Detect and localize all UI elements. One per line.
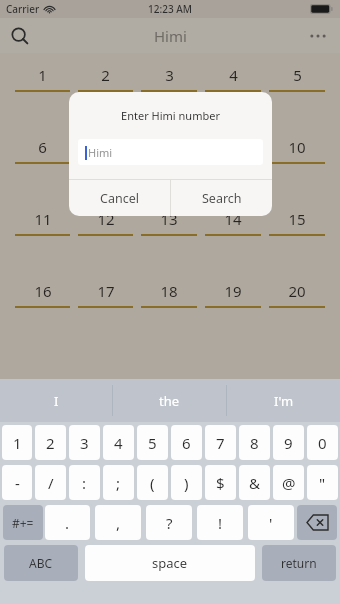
button[interactable]: 10	[267, 137, 327, 164]
staticText: "	[319, 473, 326, 493]
staticText: ?	[166, 513, 173, 533]
button[interactable]: /	[35, 465, 66, 500]
button[interactable]: $	[205, 465, 236, 500]
staticText: 6	[38, 137, 47, 157]
button[interactable]: 6	[171, 425, 202, 460]
button[interactable]: I	[0, 379, 112, 422]
staticText: Himi	[154, 26, 187, 46]
staticText: 3	[80, 433, 89, 453]
staticText: 11	[34, 209, 52, 229]
staticText: return	[281, 555, 317, 571]
staticText: 5	[293, 65, 302, 85]
button[interactable]: 12	[76, 209, 135, 236]
button[interactable]: 5	[267, 65, 327, 92]
button[interactable]: I'm	[227, 379, 340, 422]
staticText: &	[249, 473, 260, 493]
staticText: Enter Himi number	[69, 108, 272, 123]
button[interactable]: ;	[103, 465, 134, 500]
button[interactable]: the	[113, 379, 226, 422]
staticText: #+=	[12, 515, 34, 531]
button[interactable]: Himi	[78, 139, 263, 165]
button[interactable]: 17	[76, 281, 135, 308]
staticText: ABC	[29, 555, 53, 571]
staticText: 8	[250, 433, 259, 453]
button[interactable]: 5	[137, 425, 168, 460]
staticText: ;	[116, 473, 121, 493]
button[interactable]: ?	[146, 505, 192, 540]
staticText: 4	[114, 433, 123, 453]
staticText: 2	[46, 433, 55, 453]
staticText: 17	[97, 281, 115, 301]
button[interactable]: 6	[13, 137, 72, 164]
button[interactable]: 1	[13, 65, 72, 92]
button[interactable]: !	[197, 505, 243, 540]
button[interactable]: space	[85, 545, 255, 581]
button[interactable]: .	[45, 505, 90, 540]
button[interactable]: 9	[273, 425, 304, 460]
button[interactable]: Cancel	[69, 180, 170, 216]
button[interactable]: 4	[103, 425, 134, 460]
staticText: 1	[38, 65, 47, 85]
button[interactable]: 2	[76, 65, 135, 92]
button[interactable]: :	[69, 465, 100, 500]
button[interactable]: #+=	[3, 505, 43, 540]
button[interactable]: -	[2, 465, 32, 500]
staticText: $	[216, 473, 225, 493]
button[interactable]: 3	[69, 425, 100, 460]
button[interactable]: "	[307, 465, 338, 500]
staticText: 9	[229, 137, 238, 157]
staticText: the	[159, 392, 180, 410]
button[interactable]: Search	[171, 180, 272, 216]
staticText: 16	[34, 281, 52, 301]
button[interactable]: 4	[203, 65, 263, 92]
staticText: Himi	[88, 145, 113, 160]
button[interactable]: 15	[267, 209, 327, 236]
button[interactable]: 11	[13, 209, 72, 236]
staticText: 5	[148, 433, 157, 453]
button[interactable]: 2	[35, 425, 66, 460]
staticText: @	[282, 473, 296, 493]
staticText: 12:23 AM	[148, 2, 192, 16]
button[interactable]: Search	[4, 20, 36, 52]
button[interactable]: 7	[76, 137, 135, 164]
staticText: 13	[160, 209, 178, 229]
staticText: 18	[160, 281, 178, 301]
staticText: 7	[101, 137, 110, 157]
button[interactable]: More options	[302, 20, 334, 52]
button[interactable]: 20	[267, 281, 327, 308]
staticText: (	[150, 473, 155, 493]
staticText: 19	[224, 281, 242, 301]
button[interactable]: (	[137, 465, 168, 500]
button[interactable]: Delete	[297, 505, 337, 540]
staticText: 1	[13, 433, 22, 453]
button[interactable]: '	[248, 505, 294, 540]
button[interactable]: )	[171, 465, 202, 500]
button[interactable]: &	[239, 465, 270, 500]
button[interactable]: ABC	[4, 545, 78, 581]
staticText: I'm	[274, 392, 294, 410]
staticText: 9	[284, 433, 293, 453]
staticText: .	[65, 513, 70, 533]
staticText: 12	[97, 209, 115, 229]
button[interactable]: 3	[139, 65, 199, 92]
staticText: 10	[288, 137, 306, 157]
staticText: 20	[288, 281, 306, 301]
button[interactable]: @	[273, 465, 304, 500]
button[interactable]: 8	[239, 425, 270, 460]
button[interactable]: 14	[203, 209, 263, 236]
button[interactable]: 0	[307, 425, 338, 460]
button[interactable]: 19	[203, 281, 263, 308]
staticText: :	[82, 473, 87, 493]
button[interactable]: 18	[139, 281, 199, 308]
button[interactable]: 16	[13, 281, 72, 308]
button[interactable]: 7	[205, 425, 236, 460]
button[interactable]: 1	[2, 425, 32, 460]
staticText: '	[269, 513, 273, 533]
staticText: 6	[182, 433, 191, 453]
button[interactable]: ,	[95, 505, 141, 540]
button[interactable]: 13	[139, 209, 199, 236]
button[interactable]: return	[262, 545, 336, 581]
staticText: -	[15, 473, 20, 493]
